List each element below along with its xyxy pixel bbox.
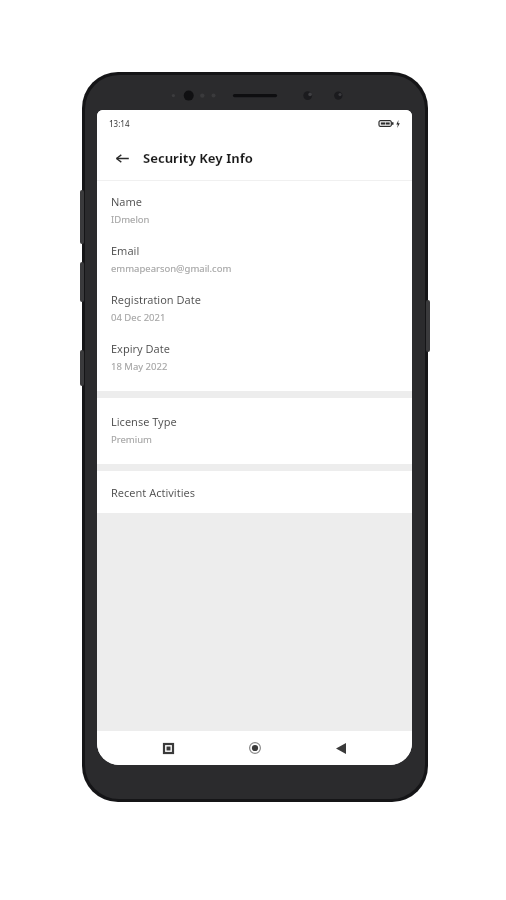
staticText: Name — [111, 194, 143, 209]
staticText: Premium — [111, 433, 152, 446]
staticText: IDmelon — [111, 213, 150, 226]
staticText: Expiry Date — [111, 341, 170, 356]
button[interactable]: Expiry Date — [97, 324, 412, 373]
button[interactable]: Registration Date — [97, 275, 412, 324]
button[interactable]: Recent Activities — [97, 471, 412, 513]
staticText: License Type — [111, 414, 177, 429]
button[interactable]: License Type — [97, 398, 412, 446]
staticText: Security Key Info — [143, 149, 253, 167]
button[interactable]: Back — [111, 147, 133, 169]
staticText: Registration Date — [111, 292, 201, 307]
button[interactable]: Back — [326, 733, 356, 763]
staticText: emmapearson@gmail.com — [111, 262, 232, 275]
button[interactable]: Home — [240, 733, 270, 763]
staticText: 04 Dec 2021 — [111, 311, 166, 324]
button[interactable]: Email — [97, 226, 412, 275]
staticText: 13:14 — [109, 118, 130, 129]
button[interactable]: Recent apps — [153, 733, 183, 763]
staticText: Recent Activities — [111, 485, 195, 500]
staticText: Email — [111, 243, 140, 258]
button[interactable]: Name — [97, 181, 412, 226]
staticText: 18 May 2022 — [111, 360, 168, 373]
